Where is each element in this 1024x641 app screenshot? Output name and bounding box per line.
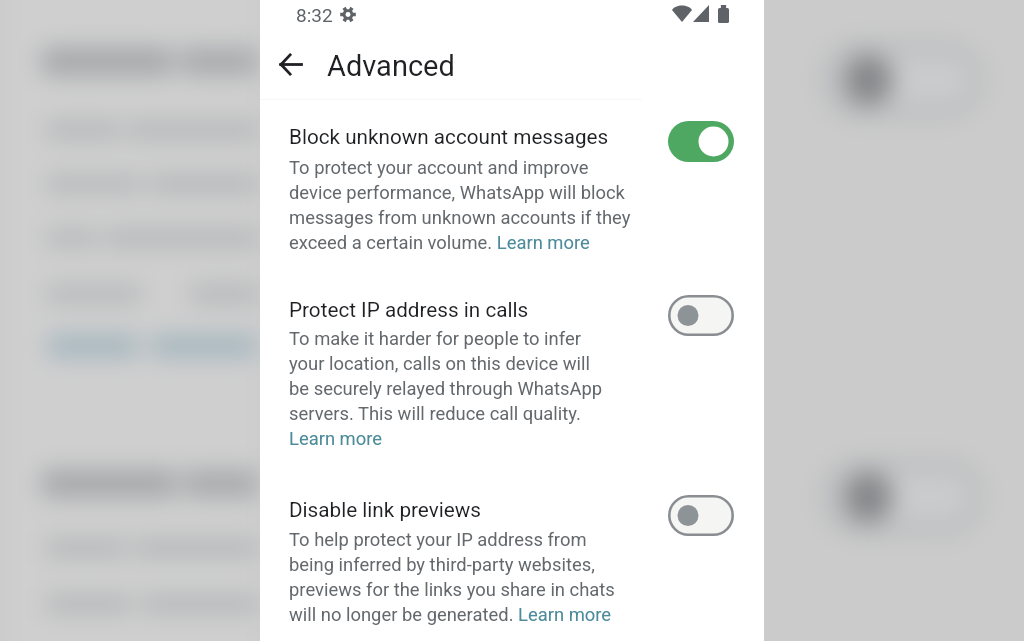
staticText: Block unknown account messages	[289, 125, 609, 149]
button[interactable]: Switch on	[662, 115, 740, 168]
staticText: To make it harder for people to infer yo…	[289, 328, 603, 449]
button[interactable]	[289, 292, 689, 439]
button[interactable]: Switch off	[662, 489, 740, 542]
staticText: To help protect your IP address from bei…	[289, 529, 615, 625]
staticText: 8:32	[296, 4, 333, 26]
button[interactable]	[289, 492, 689, 641]
staticText: Protect IP address in calls	[289, 298, 529, 322]
button[interactable]: Back	[268, 42, 313, 87]
staticText: To protect your account and improve devi…	[289, 157, 631, 253]
staticText: Disable link previews	[289, 498, 481, 522]
staticText: Advanced	[327, 49, 455, 83]
button[interactable]: Switch off	[662, 289, 740, 342]
button[interactable]	[289, 119, 689, 269]
